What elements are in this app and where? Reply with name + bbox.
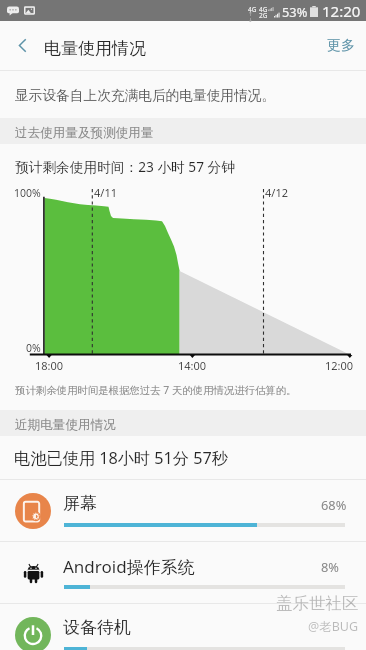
- staticText: @老BUG: [308, 618, 359, 635]
- staticText: 过去使用量及预测使用量: [15, 125, 154, 141]
- staticText: 设备待机: [63, 617, 131, 638]
- staticText: 预计剩余使用时间：23 小时 57 分钟: [15, 157, 235, 176]
- staticText: 更多: [327, 37, 355, 55]
- staticText: 4/11: [94, 185, 117, 200]
- staticText: 电池已使用 18小时 51分 57秒: [14, 447, 228, 469]
- staticText: ↑↓: [248, 11, 257, 23]
- button[interactable]: Android操作系统: [0, 542, 366, 603]
- staticText: 预计剩余使用时间是根据您过去 7 天的使用情况进行估算的。: [15, 383, 297, 397]
- staticText: 显示设备自上次充满电后的电量使用情况。: [15, 87, 276, 104]
- staticText: 2G: [259, 11, 268, 20]
- staticText: 电量使用情况: [44, 38, 146, 59]
- staticText: Android操作系统: [63, 555, 195, 578]
- button[interactable]: 屏幕: [0, 480, 366, 541]
- staticText: 8%: [321, 558, 339, 575]
- staticText: 4/12: [265, 185, 288, 200]
- staticText: 屏幕: [63, 493, 97, 514]
- button[interactable]: 设备待机: [0, 604, 366, 650]
- staticText: 12:20: [322, 1, 361, 21]
- staticText: 18:00: [35, 358, 64, 373]
- button[interactable]: 更多: [307, 23, 366, 69]
- staticText: 14:00: [178, 358, 207, 373]
- staticText: 12:00: [325, 358, 354, 373]
- staticText: 100%: [14, 186, 41, 200]
- staticText: 4G: [259, 5, 268, 14]
- button[interactable]: Back: [0, 21, 44, 70]
- staticText: 盖乐世社区: [276, 593, 359, 614]
- staticText: 68%: [321, 496, 347, 513]
- staticText: 近期电量使用情况: [15, 417, 116, 433]
- staticText: 0%: [26, 341, 41, 355]
- staticText: 4G: [248, 5, 257, 14]
- staticText: 53%: [282, 3, 308, 20]
